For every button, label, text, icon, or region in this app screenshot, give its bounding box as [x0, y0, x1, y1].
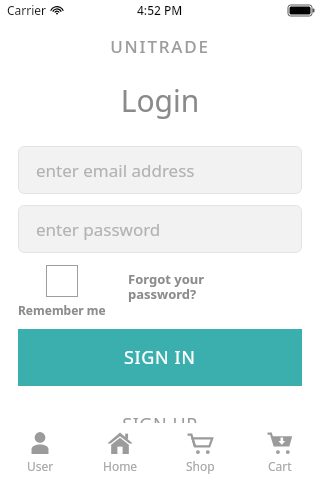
staticText: enter email address: [36, 159, 195, 182]
staticText: Home: [103, 458, 138, 474]
staticText: Carrier: [7, 2, 47, 18]
button[interactable]: SIGN IN: [18, 329, 302, 386]
button[interactable]: enter email address: [18, 146, 302, 194]
staticText: UNITRADE: [0, 35, 320, 58]
button[interactable]: Cart: [240, 423, 320, 480]
staticText: enter password: [36, 218, 161, 241]
button[interactable]: SIGN UP: [0, 412, 320, 437]
staticText: Forgot your password?: [128, 270, 205, 303]
button[interactable]: Shop: [160, 423, 240, 480]
staticText: SIGN IN: [124, 345, 196, 370]
staticText: Login: [0, 80, 320, 121]
staticText: Shop: [186, 458, 215, 474]
staticText: User: [27, 458, 54, 474]
button[interactable]: Home: [80, 423, 160, 480]
button[interactable]: enter password: [18, 205, 302, 253]
button[interactable]: Remember me checkbox: [46, 265, 78, 297]
button[interactable]: User: [0, 423, 80, 480]
staticText: Cart: [268, 458, 292, 474]
button[interactable]: Forgot your password?: [128, 270, 205, 303]
staticText: 4:52 PM: [137, 2, 183, 18]
staticText: Remember me: [18, 302, 106, 318]
